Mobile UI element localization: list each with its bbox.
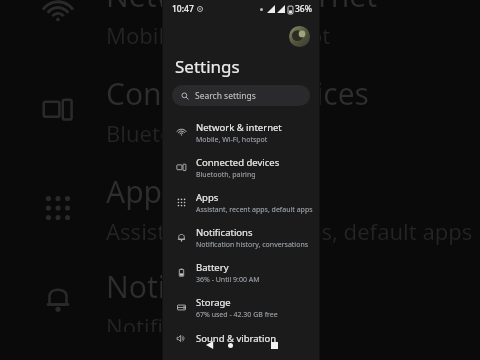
staticText: Mobile, Wi-Fi, hotspot [106, 20, 331, 50]
button[interactable]: Sound & vibration [163, 325, 319, 351]
staticText: Notifications [196, 226, 253, 239]
staticText: Storage [196, 296, 231, 309]
staticText: 10:47 [172, 3, 194, 15]
button[interactable]: Network & internet [163, 115, 319, 150]
staticText: Network & internet [106, 0, 377, 16]
staticText: Settings [175, 55, 240, 78]
staticText: Mobile, Wi-Fi, hotspot [196, 135, 268, 145]
staticText: Notification history [106, 311, 304, 332]
staticText: 36% - Until 9:00 AM [196, 275, 260, 285]
staticText: Notification history, conversations [196, 240, 309, 250]
button[interactable]: Notifications [163, 220, 319, 255]
staticText: Apps [196, 191, 219, 204]
staticText: 67% used - 42.30 GB free [196, 310, 278, 320]
button[interactable]: Search settings [172, 85, 310, 106]
staticText: Bluetooth, pairing [196, 170, 256, 180]
staticText: Apps [106, 171, 177, 212]
staticText: Assistant, recent apps, default apps [106, 216, 473, 246]
staticText: Search settings [195, 90, 256, 102]
button[interactable]: Account [289, 26, 310, 47]
staticText: Connected devices [106, 73, 369, 114]
button[interactable]: Storage [163, 290, 319, 325]
button[interactable]: Play [202, 337, 218, 353]
button[interactable]: Connected devices [163, 150, 319, 185]
staticText: Network & internet [196, 121, 282, 134]
staticText: Battery [196, 261, 229, 274]
button[interactable]: Stop [267, 338, 281, 352]
staticText: 36% [295, 3, 312, 15]
staticText: Notifications [106, 266, 285, 307]
button[interactable]: Apps [163, 185, 319, 220]
staticText: Assistant, recent apps, default apps [196, 205, 313, 215]
staticText: Connected devices [196, 156, 280, 169]
staticText: Sound & vibration [196, 332, 277, 345]
staticText: Bluetooth, pairing [106, 118, 294, 148]
button[interactable]: Battery [163, 255, 319, 290]
